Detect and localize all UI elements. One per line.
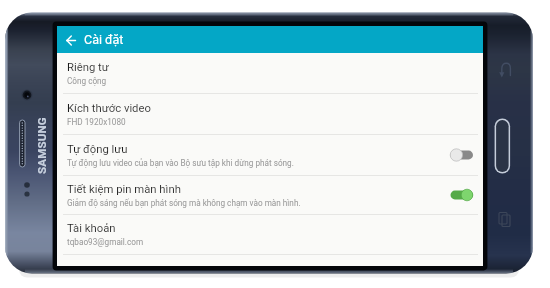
staticText: Kích thước video <box>67 102 151 115</box>
staticText: FHD 1920x1080 <box>67 117 126 127</box>
button[interactable]: Tiết kiệm pin màn hình <box>57 176 483 214</box>
staticText: Cài đặt <box>84 32 124 47</box>
button[interactable]: Tự động lưu <box>57 135 483 175</box>
button[interactable]: Riêng tư <box>57 53 483 93</box>
button[interactable]: Switch on <box>448 188 474 202</box>
staticText: tqbao93@gmail.com <box>67 237 144 247</box>
staticText: Riêng tư <box>67 61 109 74</box>
staticText: SAMSUNG <box>35 117 48 174</box>
staticText: Tự động lưu video của bạn vào Bộ sưu tập… <box>67 158 294 168</box>
button[interactable]: Back <box>57 26 483 53</box>
staticText: Giảm độ sáng nếu bạn phát sóng mà không … <box>67 198 301 208</box>
button[interactable]: Tài khoản <box>57 215 483 254</box>
staticText: Tiết kiệm pin màn hình <box>67 183 181 196</box>
button[interactable]: Kích thước video <box>57 94 483 134</box>
button[interactable]: Back <box>61 30 81 50</box>
staticText: Tự động lưu <box>67 143 128 156</box>
button[interactable]: Switch off <box>448 148 474 162</box>
staticText: Tài khoản <box>67 222 116 235</box>
staticText: Công cộng <box>67 76 107 86</box>
